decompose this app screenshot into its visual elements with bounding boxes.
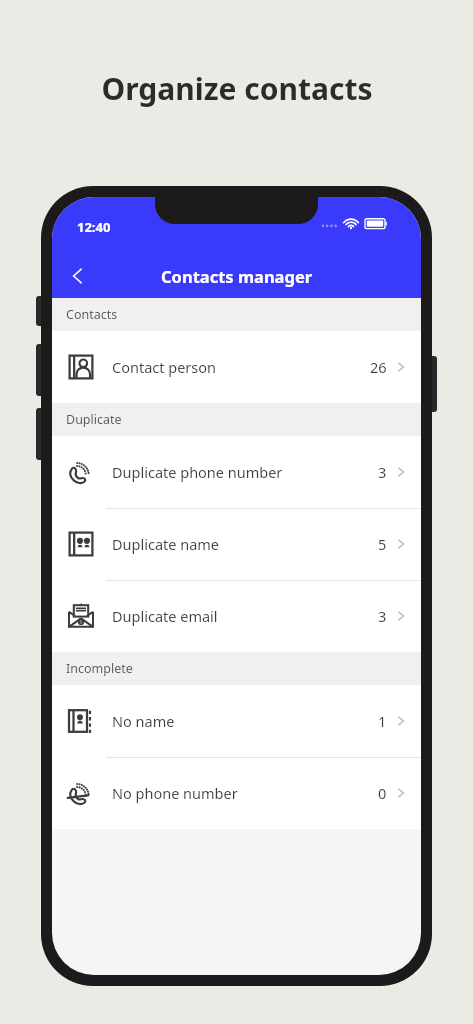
staticText: Contacts <box>66 306 118 323</box>
staticText: Duplicate email <box>112 606 378 626</box>
staticText: Organize contacts <box>101 68 373 109</box>
staticText: 3 <box>378 462 387 482</box>
button[interactable]: Contact person <box>52 331 421 403</box>
staticText: Duplicate name <box>112 534 378 554</box>
button[interactable]: Duplicate phone number <box>52 436 421 508</box>
staticText: Incomplete <box>66 660 133 677</box>
staticText: Contacts manager <box>161 265 313 287</box>
staticText: No name <box>112 711 378 731</box>
button[interactable]: Duplicate name <box>52 508 421 580</box>
staticText: Contact person <box>112 357 370 377</box>
staticText: Duplicate <box>66 411 122 428</box>
staticText: 1 <box>378 711 387 731</box>
staticText: No phone number <box>112 783 378 803</box>
staticText: 3 <box>378 606 387 626</box>
button[interactable]: Duplicate email <box>52 580 421 652</box>
staticText: 26 <box>370 357 387 377</box>
button[interactable]: No name <box>52 685 421 757</box>
staticText: 0 <box>378 783 387 803</box>
staticText: Duplicate phone number <box>112 462 378 482</box>
staticText: 5 <box>378 534 387 554</box>
button[interactable]: No phone number <box>52 757 421 829</box>
staticText: 12:40 <box>77 218 111 236</box>
button[interactable]: Back <box>58 256 98 296</box>
